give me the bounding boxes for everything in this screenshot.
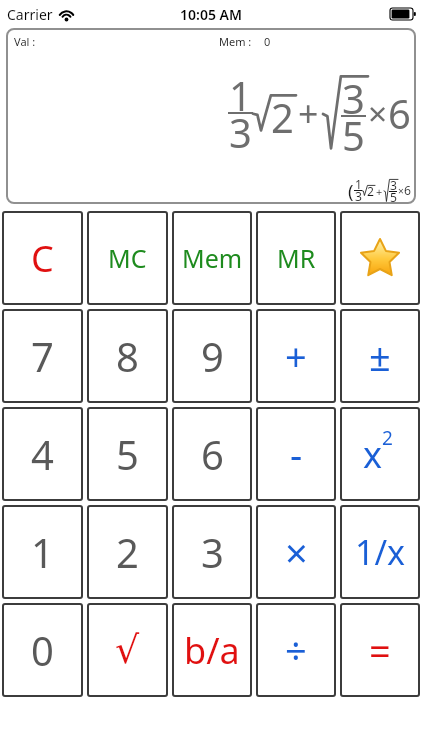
button[interactable]: 4	[2, 407, 83, 501]
staticText: 5	[342, 108, 365, 162]
button[interactable]: ×	[256, 505, 336, 599]
staticText: 2	[271, 90, 294, 144]
button[interactable]	[340, 211, 420, 305]
button[interactable]: 3	[172, 505, 252, 599]
staticText: 0	[31, 623, 54, 677]
button[interactable]: C	[2, 211, 83, 305]
button[interactable]: √	[87, 603, 168, 697]
staticText: 9	[201, 329, 224, 383]
staticText: Carrier	[7, 5, 53, 24]
staticText: 5	[116, 427, 139, 481]
staticText: MR	[277, 241, 316, 275]
staticText: 2	[367, 183, 374, 200]
button[interactable]: 1	[2, 505, 83, 599]
staticText: ÷	[285, 624, 307, 676]
staticText: 4	[31, 427, 54, 481]
staticText: +	[376, 184, 383, 199]
button[interactable]: 9	[172, 309, 252, 403]
staticText: C	[31, 234, 54, 283]
button[interactable]: 6	[172, 407, 252, 501]
button[interactable]: 8	[87, 309, 168, 403]
staticText: 10:05 AM	[180, 5, 242, 24]
staticText: 3	[201, 525, 224, 579]
staticText: 2	[382, 425, 393, 451]
staticText: 3	[229, 105, 252, 159]
staticText: 1	[31, 525, 54, 579]
button[interactable]: ±	[340, 309, 420, 403]
staticText: ±	[369, 330, 391, 382]
staticText: 3	[390, 177, 397, 194]
button[interactable]: +	[256, 309, 336, 403]
button[interactable]: ÷	[256, 603, 336, 697]
staticText: -	[290, 428, 303, 480]
button[interactable]: MR	[256, 211, 336, 305]
button[interactable]: b/a	[172, 603, 252, 697]
staticText: ×	[368, 90, 388, 136]
button[interactable]: MC	[87, 211, 168, 305]
button[interactable]: =	[340, 603, 420, 697]
staticText: b/a	[184, 626, 240, 675]
staticText: 7	[31, 329, 54, 383]
button[interactable]: 7	[2, 309, 83, 403]
staticText: x	[363, 430, 383, 479]
staticText: 6	[201, 427, 224, 481]
staticText: Val :	[14, 34, 36, 49]
staticText: =	[369, 624, 391, 676]
staticText: 0	[264, 34, 271, 49]
staticText: Mem	[182, 241, 243, 275]
button[interactable]: 5	[87, 407, 168, 501]
button[interactable]: 0	[2, 603, 83, 697]
staticText: ×	[285, 525, 308, 579]
staticText: 3	[342, 71, 365, 125]
staticText: +	[285, 330, 307, 382]
button[interactable]: 2	[87, 505, 168, 599]
staticText: ×	[398, 184, 404, 198]
staticText: +	[298, 89, 319, 138]
staticText: √	[115, 628, 140, 672]
staticText: 1	[229, 68, 252, 122]
staticText: 1	[355, 176, 362, 193]
staticText: 2	[116, 525, 139, 579]
staticText: 8	[116, 329, 139, 383]
staticText: 6	[388, 86, 411, 140]
staticText: (	[348, 178, 354, 203]
button[interactable]: 1/x	[340, 505, 420, 599]
button[interactable]: x	[340, 407, 420, 501]
button[interactable]: -	[256, 407, 336, 501]
staticText: MC	[108, 241, 147, 275]
staticText: 6	[404, 182, 411, 199]
staticText: Mem :	[219, 34, 252, 49]
staticText: 5	[390, 189, 397, 206]
staticText: 3	[355, 188, 362, 205]
staticText: 1/x	[355, 529, 406, 575]
button[interactable]: Mem	[172, 211, 252, 305]
